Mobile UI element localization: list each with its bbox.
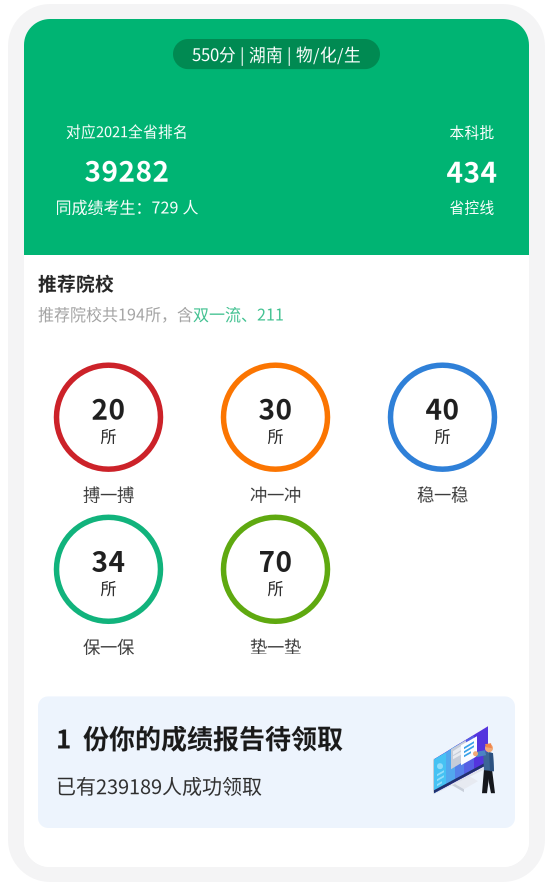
- staticText: 34: [91, 539, 125, 580]
- staticText: 推荐院校共194所，含: [38, 302, 193, 325]
- staticText: 39282: [84, 149, 169, 190]
- staticText: 20: [91, 387, 125, 428]
- staticText: 30: [258, 387, 292, 428]
- staticText: 所: [100, 576, 116, 599]
- staticText: 稳一稳: [417, 481, 468, 506]
- staticText: 垫一垫: [250, 633, 301, 658]
- staticText: 本科批: [449, 121, 494, 142]
- staticText: 对应2021全省排名: [66, 120, 188, 141]
- staticText: 1 份你的成绩报告待领取: [56, 718, 343, 756]
- staticText: 40: [425, 387, 459, 428]
- staticText: 所: [267, 424, 283, 447]
- staticText: 冲一冲: [250, 481, 301, 506]
- staticText: 已有239189人成功领取: [56, 771, 262, 800]
- staticText: 所: [434, 424, 450, 447]
- staticText: 推荐院校: [38, 269, 114, 296]
- button[interactable]: 1 份你的成绩报告待领取: [38, 696, 515, 828]
- staticText: 保一保: [83, 633, 134, 658]
- staticText: 双一流、211: [193, 302, 284, 325]
- staticText: 省控线: [449, 196, 494, 217]
- staticText: 所: [100, 424, 116, 447]
- staticText: 同成绩考生：729 人: [55, 195, 198, 218]
- staticText: 550分 | 湖南 | 物/化/生: [192, 42, 361, 66]
- staticText: 所: [267, 576, 283, 599]
- staticText: 434: [446, 150, 497, 191]
- staticText: 70: [258, 539, 292, 580]
- staticText: 搏一搏: [83, 481, 134, 506]
